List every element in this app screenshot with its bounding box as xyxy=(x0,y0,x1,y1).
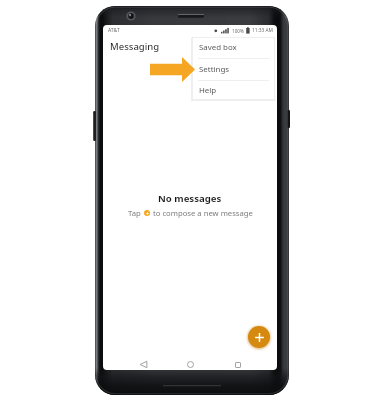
staticText: AT&T xyxy=(108,27,120,34)
staticText: No messages xyxy=(158,192,222,205)
staticText: 100% xyxy=(232,28,244,34)
button[interactable]: Saved box xyxy=(192,37,275,58)
staticText: Settings xyxy=(199,64,230,75)
button[interactable]: Compose new message xyxy=(248,326,270,348)
button[interactable]: Home xyxy=(182,359,198,370)
staticText: to compose a new message xyxy=(153,208,253,218)
staticText: Tap xyxy=(128,208,141,218)
button[interactable]: Back xyxy=(135,359,151,370)
staticText: Messaging xyxy=(110,40,160,53)
staticText: Saved box xyxy=(199,42,237,53)
staticText: Help xyxy=(199,85,217,96)
button[interactable]: Settings xyxy=(192,59,275,80)
button[interactable]: Help xyxy=(192,81,275,100)
button[interactable]: Recent apps xyxy=(230,359,246,370)
staticText: 11:33 AM xyxy=(252,27,273,34)
